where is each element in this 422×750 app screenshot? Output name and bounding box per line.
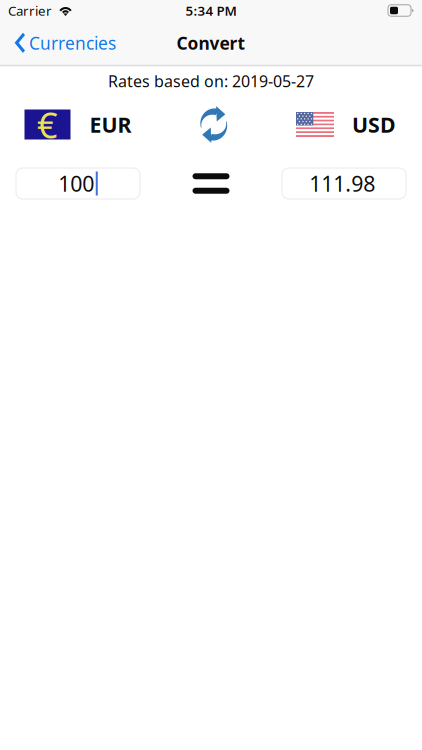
staticText: Carrier: [8, 2, 52, 19]
staticText: Rates based on: 2019-05-27: [108, 70, 314, 92]
staticText: Convert: [176, 31, 245, 54]
staticText: EUR: [89, 110, 131, 139]
staticText: 111.98: [309, 169, 375, 198]
button[interactable]: 111.98: [282, 168, 406, 199]
button[interactable]: USD: [296, 110, 396, 139]
button[interactable]: €: [24, 109, 131, 139]
button[interactable]: Currencies: [0, 23, 124, 63]
staticText: 5:34 PM: [185, 2, 236, 19]
staticText: USD: [352, 110, 396, 139]
staticText: Currencies: [29, 31, 116, 54]
staticText: €: [37, 101, 58, 148]
button[interactable]: 100: [16, 168, 140, 199]
staticText: 100: [58, 169, 94, 198]
button[interactable]: Swap currencies: [196, 105, 232, 143]
